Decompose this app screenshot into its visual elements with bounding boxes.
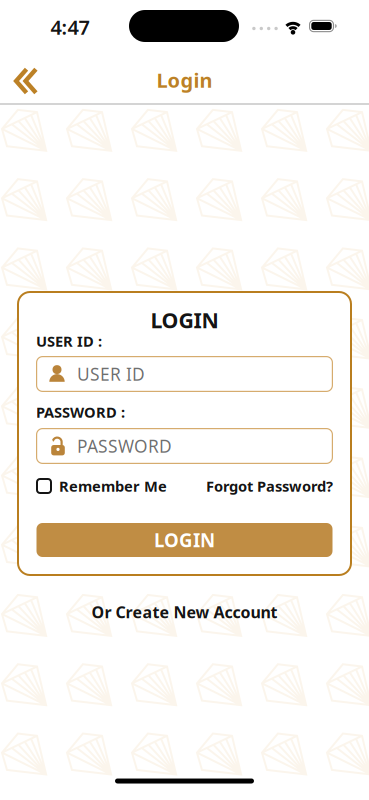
staticText: Login [156, 67, 212, 93]
button[interactable]: Forgot Password? [206, 476, 333, 496]
button[interactable]: Back [7, 63, 44, 99]
staticText: LOGIN [150, 306, 218, 334]
staticText: Remember Me [59, 476, 167, 496]
staticText: Or Create New Account [91, 601, 277, 623]
staticText: 4:47 [50, 14, 89, 40]
staticText: Forgot Password? [206, 476, 333, 496]
staticText: USER ID : [36, 331, 102, 351]
button[interactable]: LOGIN [36, 523, 332, 557]
staticText: PASSWORD [77, 434, 172, 457]
staticText: PASSWORD : [36, 402, 125, 422]
button[interactable]: Or Create New Account [91, 601, 277, 623]
staticText: LOGIN [154, 528, 215, 552]
staticText: USER ID [77, 362, 145, 385]
button[interactable]: PASSWORD [36, 428, 333, 464]
button[interactable]: USER ID [36, 356, 333, 392]
button[interactable]: Remember Me [36, 476, 167, 496]
